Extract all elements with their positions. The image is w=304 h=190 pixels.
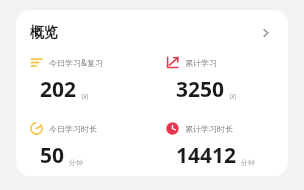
button[interactable]: 今日学习时长 — [16, 122, 152, 170]
staticText: 分钟 — [241, 158, 255, 167]
staticText: 今日学习&复习 — [49, 57, 103, 68]
staticText: 14412 — [176, 141, 237, 170]
button[interactable]: 今日学习&复习 — [16, 56, 152, 104]
button[interactable]: 概览 — [16, 10, 288, 56]
staticText: 概览 — [30, 24, 58, 42]
staticText: 分钟 — [69, 158, 83, 167]
button[interactable]: 累计学习 — [152, 56, 288, 104]
staticText: 词 — [81, 92, 88, 101]
staticText: 词 — [229, 92, 236, 101]
staticText: 累计学习时长 — [185, 124, 233, 134]
other: More — [256, 23, 276, 43]
staticText: 202 — [40, 75, 77, 104]
staticText: 50 — [40, 141, 65, 170]
staticText: 累计学习 — [185, 58, 217, 68]
staticText: 3250 — [176, 75, 225, 104]
button[interactable]: 累计学习时长 — [152, 122, 288, 170]
staticText: 今日学习时长 — [49, 124, 97, 134]
